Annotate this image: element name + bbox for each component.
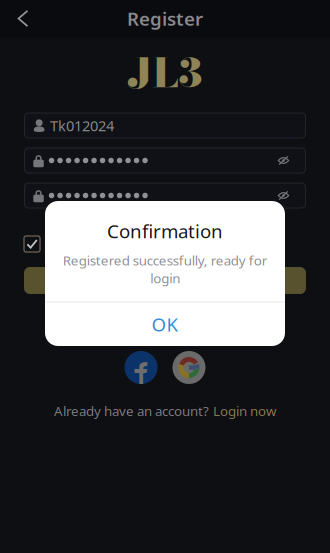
staticText: Registered successfully, ready for login [62,251,267,287]
staticText: Confirmation [107,219,223,243]
staticText: Already have an account? [54,402,209,420]
button[interactable]: OK [45,302,285,346]
button[interactable]: Sign in with Google [172,351,205,384]
button[interactable]: Agree to terms [24,236,40,252]
staticText: Register [129,269,200,292]
button[interactable]: Sign in with Facebook [124,351,157,384]
staticText: Register [127,6,203,31]
button[interactable]: Register [24,267,306,294]
staticText: JL3 [127,43,202,103]
staticText: OK [151,312,178,337]
button[interactable]: Login now [213,402,276,420]
button[interactable]: Back [0,1,38,35]
staticText: Tk012024 [50,116,114,135]
button[interactable]: Show confirm password [278,191,289,200]
staticText: Login now [213,402,276,420]
button[interactable]: Show password [278,156,289,165]
